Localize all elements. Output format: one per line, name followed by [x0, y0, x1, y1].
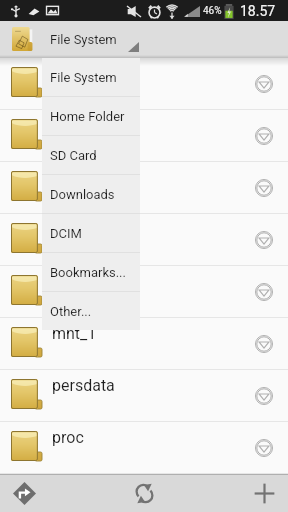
button[interactable]: acct [0, 58, 288, 109]
button[interactable]: Home Folder [42, 97, 140, 135]
staticText: proc [52, 428, 84, 447]
button[interactable]: d [0, 214, 288, 265]
button[interactable]: Expand persdata [244, 376, 284, 416]
staticText: 18.57 [240, 3, 276, 19]
button[interactable]: Other... [42, 292, 140, 330]
staticText: File System [50, 32, 117, 47]
button[interactable]: Expand config [244, 168, 284, 208]
staticText: data [52, 272, 84, 291]
button[interactable]: data [0, 266, 288, 317]
button[interactable]: Downloads [42, 175, 140, 213]
button[interactable]: Expand data [244, 272, 284, 312]
button[interactable]: SD Card [42, 136, 140, 174]
staticText: config [52, 168, 97, 187]
button[interactable]: File System [0, 21, 288, 55]
staticText: Other... [50, 304, 92, 319]
staticText: 46% [203, 5, 222, 17]
staticText: DCIM [50, 226, 82, 241]
button[interactable]: Expand d [244, 220, 284, 260]
staticText: File System [50, 70, 117, 85]
staticText: Bookmarks... [50, 265, 126, 280]
button[interactable]: Navigate up [0, 475, 48, 512]
button[interactable]: Refresh [120, 475, 168, 512]
staticText: acct [52, 64, 83, 83]
staticText: d [52, 220, 62, 239]
button[interactable]: proc [0, 422, 288, 473]
button[interactable]: Expand mnt_1 [244, 324, 284, 364]
button[interactable]: mnt_1 [0, 318, 288, 369]
button[interactable]: Expand cache [244, 116, 284, 156]
staticText: SD Card [50, 148, 97, 163]
button[interactable]: Expand proc [244, 428, 284, 468]
button[interactable]: Expand acct [244, 64, 284, 104]
button[interactable]: Bookmarks... [42, 253, 140, 291]
staticText: Downloads [50, 187, 115, 202]
staticText: cache [52, 116, 95, 135]
button[interactable]: File System [42, 58, 140, 96]
button[interactable]: config [0, 162, 288, 213]
button[interactable]: Add [240, 475, 288, 512]
button[interactable]: persdata [0, 370, 288, 421]
button[interactable]: cache [0, 110, 288, 161]
staticText: Home Folder [50, 109, 125, 124]
button[interactable]: DCIM [42, 214, 140, 252]
staticText: mnt_1 [52, 324, 97, 343]
staticText: persdata [52, 376, 115, 395]
